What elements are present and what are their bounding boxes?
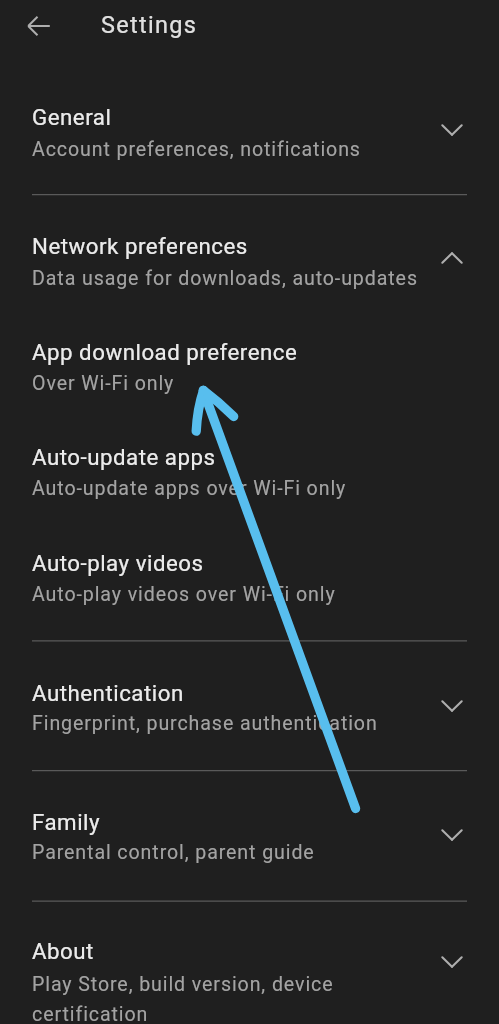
staticText: Authentication <box>32 680 184 706</box>
staticText: App download preference <box>32 339 298 365</box>
button[interactable] <box>0 320 499 410</box>
button[interactable]: Expand General <box>428 106 476 154</box>
button[interactable]: Expand About <box>428 938 476 986</box>
button[interactable] <box>0 424 499 518</box>
button[interactable] <box>0 660 499 752</box>
staticText: Auto-play videos over Wi-Fi only <box>32 583 336 606</box>
button[interactable]: Back <box>15 2 63 50</box>
button[interactable] <box>0 530 499 624</box>
button[interactable] <box>86 0 210 52</box>
button[interactable] <box>0 210 499 302</box>
staticText: Play Store, build version, device certif… <box>32 973 362 1024</box>
button[interactable]: Collapse Network preferences <box>428 234 476 282</box>
staticText: Auto-play videos <box>32 550 204 576</box>
staticText: General <box>32 104 112 130</box>
staticText: About <box>32 938 94 964</box>
staticText: Network preferences <box>32 233 248 259</box>
staticText: Auto-update apps over Wi-Fi only <box>32 477 347 500</box>
staticText: Data usage for downloads, auto-updates <box>32 267 418 290</box>
button[interactable] <box>0 790 499 882</box>
staticText: Fingerprint, purchase authentication <box>32 712 378 735</box>
staticText: Over Wi-Fi only <box>32 372 175 395</box>
staticText: Settings <box>101 11 198 39</box>
staticText: Family <box>32 809 101 835</box>
button[interactable]: Expand Family <box>428 811 476 859</box>
staticText: Account preferences, notifications <box>32 138 361 161</box>
staticText: Auto-update apps <box>32 444 216 470</box>
button[interactable] <box>0 88 499 178</box>
button[interactable] <box>0 918 499 1024</box>
staticText: Parental control, parent guide <box>32 841 315 864</box>
button[interactable]: Expand Authentication <box>428 682 476 730</box>
